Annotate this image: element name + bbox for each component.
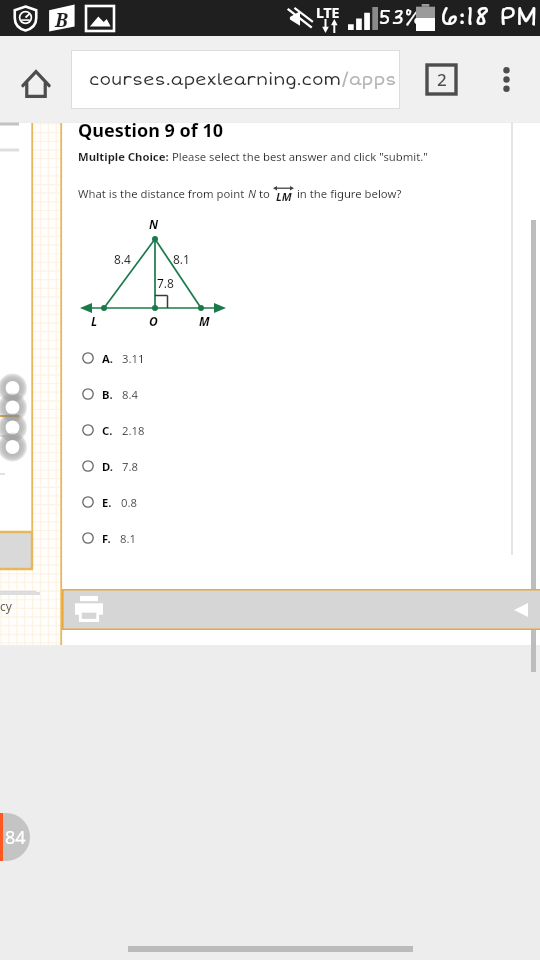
button[interactable]: courses.apexlearning.com/apps — [72, 51, 399, 108]
staticText: 8.1 — [173, 251, 190, 267]
staticText: courses.apexlearning.com/apps — [89, 69, 397, 90]
staticText: Multiple Choice: — [78, 149, 169, 164]
button[interactable]: B. — [82, 381, 202, 407]
staticText: 8.1 — [120, 531, 136, 546]
staticText: Please select the best answer and click … — [169, 149, 428, 164]
staticText: 3.11 — [122, 351, 145, 366]
button[interactable]: A. — [82, 345, 202, 371]
staticText: 7.8 — [122, 459, 138, 474]
staticText: D. — [102, 459, 113, 474]
staticText: in the figure below? — [294, 186, 402, 201]
staticText: Question 9 of 10 — [78, 118, 224, 143]
staticText: What is the distance from point — [78, 186, 248, 201]
staticText: 8.4 — [114, 251, 131, 267]
staticText: N — [248, 186, 256, 201]
button[interactable]: More options — [483, 56, 529, 102]
button[interactable]: C. — [82, 417, 202, 443]
staticText: LM — [276, 189, 292, 204]
staticText: 7.8 — [157, 275, 174, 291]
staticText: 2.18 — [122, 423, 145, 438]
staticText: 0.8 — [121, 495, 137, 510]
button[interactable]: Home — [13, 61, 59, 107]
staticText: E. — [102, 495, 112, 510]
staticText: 8.4 — [122, 387, 138, 402]
staticText: LTE — [316, 3, 340, 22]
staticText: 6:18 PM — [440, 1, 538, 33]
staticText: N — [149, 216, 159, 232]
staticText: C. — [102, 423, 113, 438]
staticText: 53% — [378, 5, 423, 30]
staticText: 84 — [5, 825, 26, 850]
button[interactable]: D. — [82, 453, 202, 479]
staticText: L — [91, 313, 98, 329]
staticText: A. — [102, 351, 113, 366]
button[interactable]: F. — [82, 525, 202, 551]
button[interactable]: 84 — [0, 813, 30, 861]
staticText: 2 — [437, 68, 447, 91]
staticText: to — [256, 186, 273, 201]
staticText: cy — [0, 598, 12, 614]
button[interactable]: Tabs — [418, 56, 464, 102]
staticText: M — [199, 313, 210, 329]
staticText: B — [55, 7, 68, 33]
staticText: B. — [102, 387, 113, 402]
button[interactable]: E. — [82, 489, 202, 515]
staticText: F. — [102, 531, 111, 546]
button[interactable] — [62, 589, 540, 630]
staticText: O — [149, 313, 158, 329]
